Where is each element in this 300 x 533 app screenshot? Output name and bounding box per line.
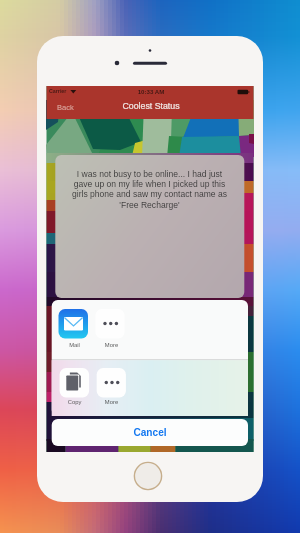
staticText: Copy — [65, 399, 84, 406]
staticText: Cancel — [52, 427, 248, 438]
staticText: More — [102, 399, 121, 406]
staticText: girls phone and saw my contact name as — [55, 189, 244, 199]
button[interactable]: Mail — [59, 309, 89, 348]
staticText: Back — [57, 103, 83, 111]
staticText: 10:33 AM — [121, 88, 181, 95]
staticText: gave up on my life when I picked up this — [55, 179, 244, 189]
button[interactable]: More actions — [97, 368, 126, 407]
button[interactable]: More sharing options — [95, 309, 124, 348]
staticText: Mail — [65, 342, 84, 349]
button[interactable]: Copy — [60, 368, 90, 407]
staticText: Coolest Status — [101, 101, 201, 111]
button[interactable]: Back — [50, 100, 82, 118]
staticText: 'Free Recharge' — [55, 200, 244, 210]
staticText: More — [102, 342, 121, 349]
staticText: I was not busy to be online... I had jus… — [55, 169, 244, 179]
button[interactable]: Cancel — [52, 419, 248, 446]
staticText: Carrier — [49, 88, 79, 94]
